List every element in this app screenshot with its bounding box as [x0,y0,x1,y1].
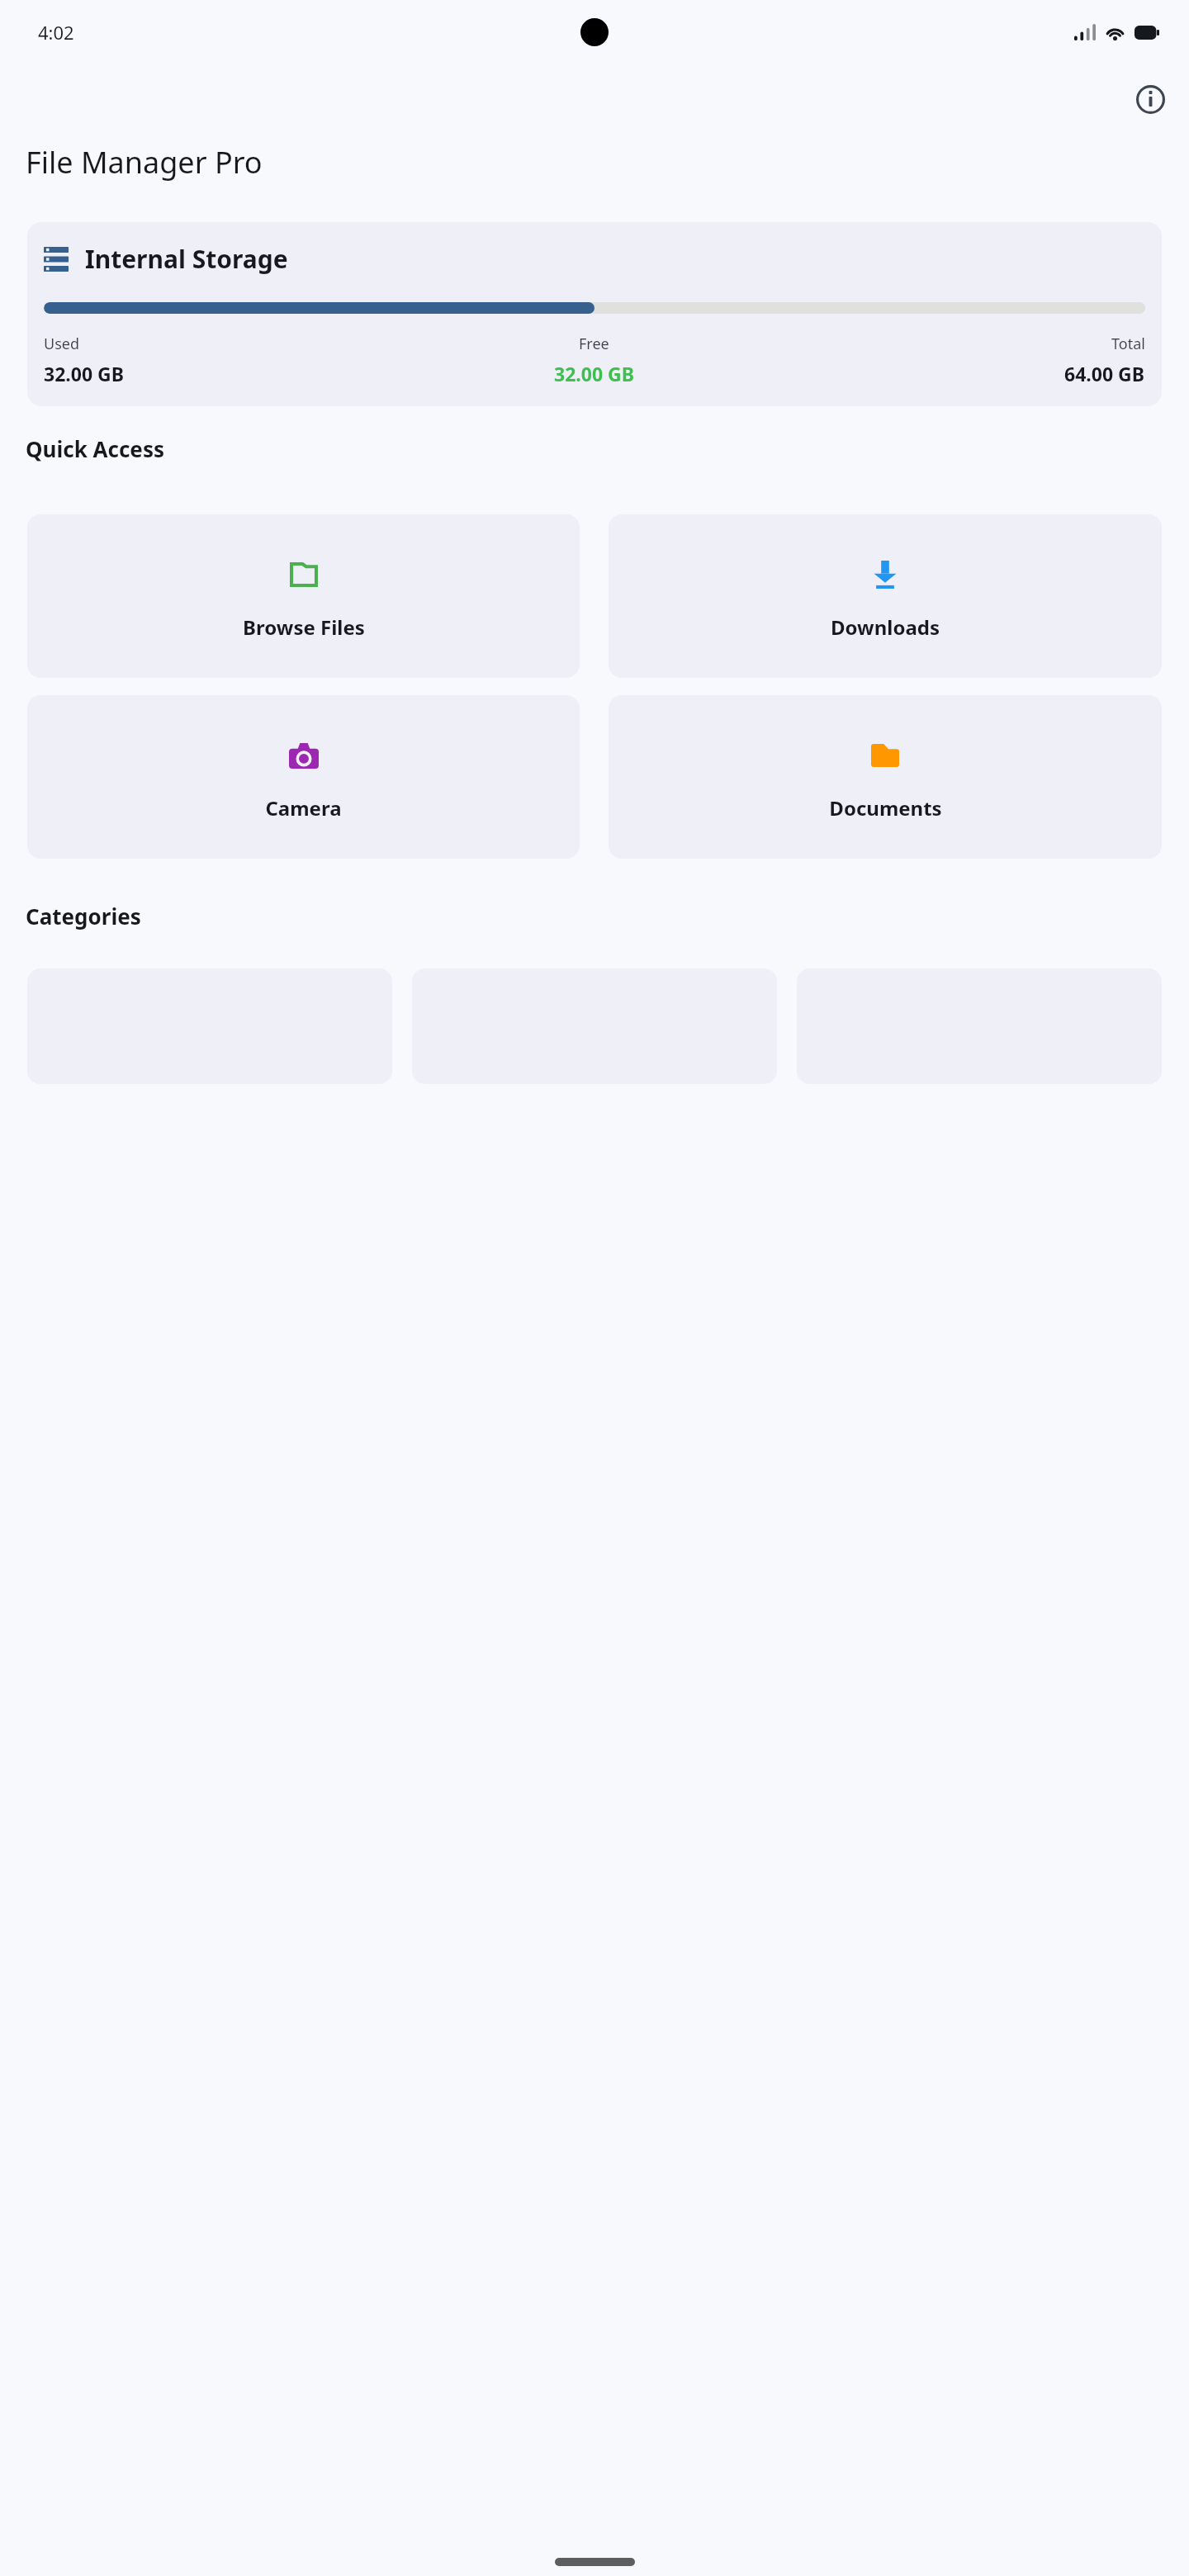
staticText: Quick Access [26,434,164,463]
staticText: Documents [829,794,942,822]
staticText: Internal Storage [85,242,288,276]
staticText: 64.00 GB [1064,361,1145,386]
button[interactable]: Browse Files [27,514,580,678]
staticText: 32.00 GB [44,361,125,386]
button[interactable]: Downloads [609,514,1162,678]
button[interactable]: Camera [27,695,580,859]
staticText: Used [44,334,80,354]
staticText: Total [1111,334,1145,354]
button[interactable]: Info [1132,81,1168,117]
staticText: 4:02 [38,20,74,45]
button[interactable]: Documents [609,695,1162,859]
staticText: 32.00 GB [554,361,635,386]
staticText: Categories [26,902,141,930]
button[interactable]: Internal Storage [27,222,1162,406]
staticText: Camera [265,794,342,822]
staticText: Free [579,334,609,354]
staticText: Browse Files [243,613,365,641]
staticText: Downloads [831,613,940,641]
staticText: File Manager Pro [26,142,263,182]
